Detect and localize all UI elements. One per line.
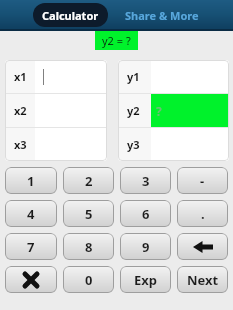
staticText: y2 = ? — [102, 33, 131, 48]
button[interactable]: 2 — [63, 167, 114, 194]
staticText: 0 — [85, 271, 93, 289]
button[interactable] — [35, 60, 107, 93]
staticText: - — [200, 172, 205, 190]
staticText: x3 — [14, 137, 27, 152]
staticText: y1 — [127, 69, 140, 84]
button[interactable]: Share & More — [121, 4, 203, 27]
button[interactable] — [5, 266, 57, 293]
staticText: Share & More — [125, 8, 199, 23]
staticText: 9 — [142, 238, 150, 256]
button[interactable]: 4 — [5, 200, 57, 227]
button[interactable] — [177, 233, 228, 260]
button[interactable]: 9 — [120, 233, 171, 260]
button[interactable]: Exp — [120, 266, 171, 293]
button[interactable] — [151, 128, 229, 161]
staticText: Calculator — [42, 8, 99, 23]
staticText: 1 — [27, 172, 35, 190]
button[interactable]: 1 — [5, 167, 57, 194]
button[interactable]: 3 — [120, 167, 171, 194]
staticText: ? — [156, 103, 162, 119]
staticText: y2 — [127, 103, 140, 118]
button[interactable] — [151, 60, 229, 93]
staticText: 5 — [85, 205, 93, 223]
button[interactable] — [35, 94, 107, 127]
button[interactable]: - — [177, 167, 228, 194]
button[interactable]: ? — [151, 94, 229, 127]
staticText: Next — [187, 271, 219, 289]
button[interactable]: 5 — [63, 200, 114, 227]
staticText: . — [201, 205, 205, 223]
button[interactable]: Calculator — [33, 3, 108, 27]
button[interactable]: 7 — [5, 233, 57, 260]
button[interactable]: 8 — [63, 233, 114, 260]
staticText: 4 — [27, 205, 35, 223]
staticText: x2 — [14, 103, 27, 118]
staticText: 8 — [85, 238, 93, 256]
staticText: 2 — [85, 172, 93, 190]
staticText: Exp — [134, 271, 158, 289]
staticText: x1 — [14, 69, 27, 84]
staticText: y3 — [127, 137, 140, 152]
staticText: 6 — [142, 205, 150, 223]
button[interactable]: . — [177, 200, 228, 227]
button[interactable] — [35, 128, 107, 161]
button[interactable]: 0 — [63, 266, 114, 293]
staticText: 7 — [27, 238, 35, 256]
button[interactable]: 6 — [120, 200, 171, 227]
staticText: 3 — [142, 172, 150, 190]
button[interactable]: Next — [177, 266, 228, 293]
